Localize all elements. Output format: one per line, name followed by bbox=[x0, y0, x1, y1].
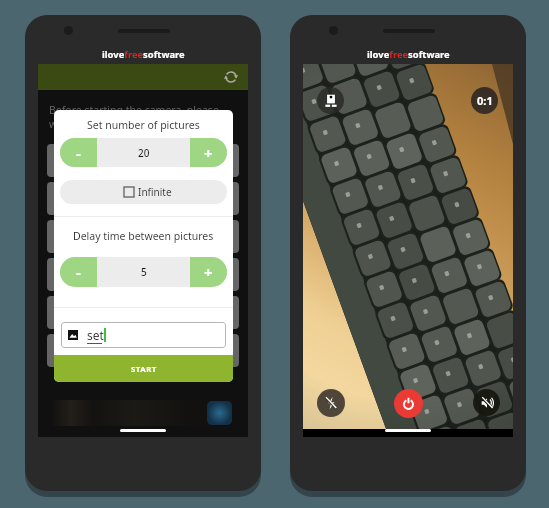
staticText: Infinite bbox=[138, 185, 172, 199]
staticText: set bbox=[87, 327, 104, 343]
staticText: ilovefreesoftware bbox=[102, 48, 185, 61]
staticText: Delay time between pictures bbox=[73, 229, 214, 243]
staticText: Before starting the camera, please wait … bbox=[49, 103, 219, 131]
staticText: - bbox=[76, 262, 81, 282]
button[interactable]: START bbox=[54, 355, 233, 382]
button[interactable]: Refresh bbox=[222, 68, 240, 86]
staticText: - bbox=[76, 143, 81, 163]
button[interactable]: Switch camera bbox=[317, 87, 344, 114]
button[interactable]: Increase bbox=[190, 257, 227, 287]
button[interactable]: Stop recording bbox=[394, 389, 423, 418]
button[interactable]: Mute bbox=[473, 389, 500, 416]
button[interactable]: Decrease bbox=[60, 257, 97, 287]
staticText: START bbox=[131, 364, 157, 375]
staticText: 0:1 bbox=[477, 93, 493, 108]
staticText: + bbox=[204, 143, 213, 163]
button[interactable]: set bbox=[61, 322, 226, 348]
staticText: 5 bbox=[141, 265, 147, 279]
staticText: Set number of pictures bbox=[87, 118, 200, 132]
button[interactable]: Increase bbox=[190, 138, 227, 167]
staticText: 20 bbox=[138, 146, 150, 160]
button[interactable]: Infinite bbox=[60, 180, 227, 204]
button[interactable]: Decrease bbox=[60, 138, 97, 167]
button[interactable]: Flash off bbox=[317, 389, 345, 417]
staticText: ilovefreesoftware bbox=[367, 48, 450, 61]
staticText: + bbox=[204, 262, 213, 282]
